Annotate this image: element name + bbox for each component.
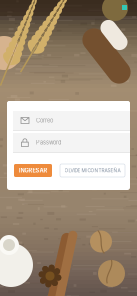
- staticText: OLVIDE MI CONTRASEÑA: [64, 168, 120, 173]
- button[interactable]: OLVIDE MI CONTRASEÑA: [60, 164, 125, 177]
- button[interactable]: INGRESAR: [14, 164, 52, 177]
- staticText: Password: [36, 139, 61, 146]
- button[interactable]: Correo: [13, 111, 130, 130]
- button[interactable]: Password: [13, 133, 130, 152]
- staticText: Correo: [36, 117, 53, 124]
- staticText: INGRESAR: [18, 167, 47, 174]
